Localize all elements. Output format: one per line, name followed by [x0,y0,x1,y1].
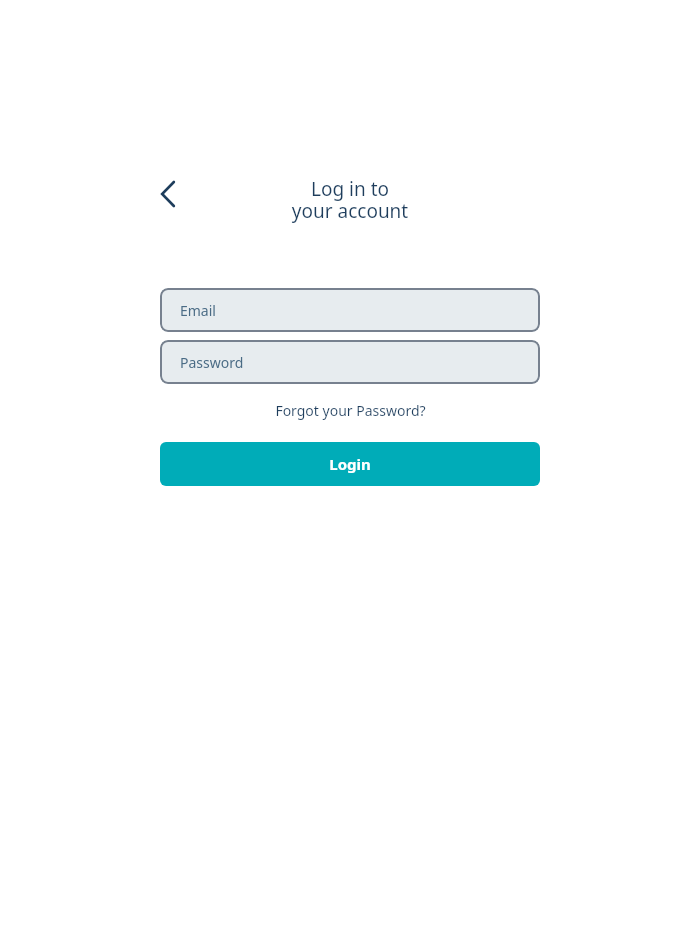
staticText: Log in to your account [0,176,700,224]
staticText: Login [329,454,371,474]
button[interactable]: Password [160,340,540,384]
staticText: Email [180,301,216,320]
button[interactable]: Login [160,442,540,486]
button[interactable]: Email [160,288,540,332]
button[interactable]: Back [150,176,186,212]
staticText: Password [180,353,244,372]
button[interactable]: Forgot your Password? [160,401,540,420]
staticText: Forgot your Password? [275,401,426,420]
